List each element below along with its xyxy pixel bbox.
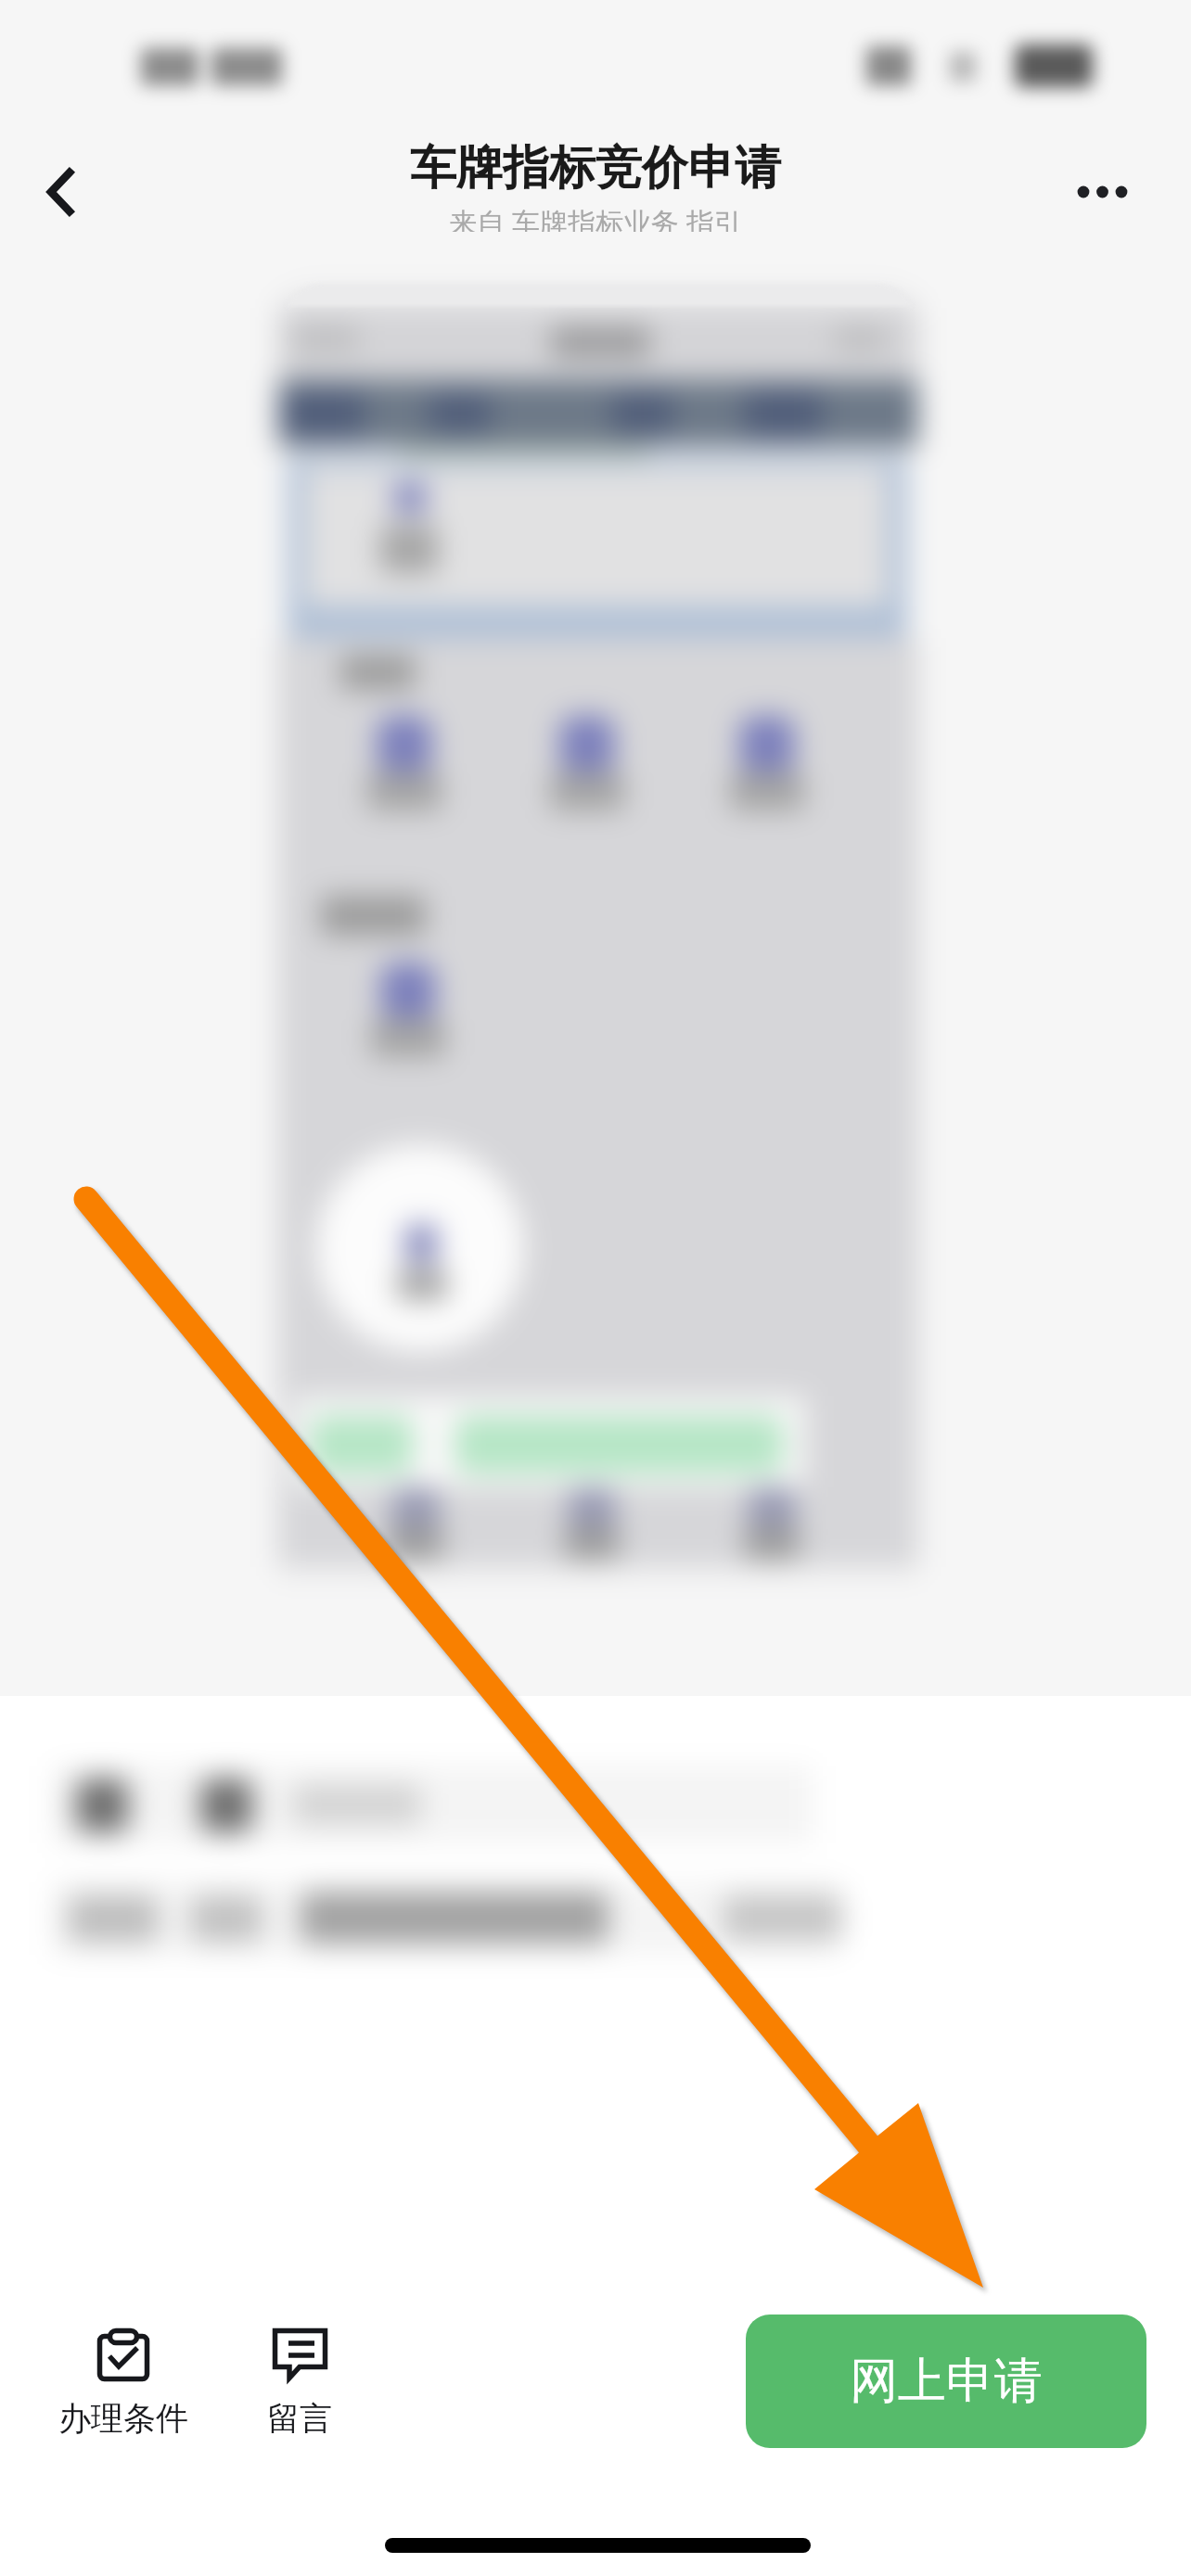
button[interactable]: 网上申请 xyxy=(746,2315,1146,2448)
button[interactable]: More options xyxy=(1050,148,1143,241)
staticText: 留言 xyxy=(267,2398,332,2439)
button[interactable]: 办理条件 xyxy=(58,2315,189,2439)
staticText: 来自 车牌指标业务 指引 xyxy=(449,203,742,241)
staticText: 办理条件 xyxy=(58,2398,188,2439)
button[interactable]: 留言 xyxy=(234,2315,365,2439)
button[interactable]: Back xyxy=(7,144,104,240)
staticText: 车牌指标竞价申请 xyxy=(410,139,781,198)
staticText: 网上申请 xyxy=(850,2351,1043,2412)
